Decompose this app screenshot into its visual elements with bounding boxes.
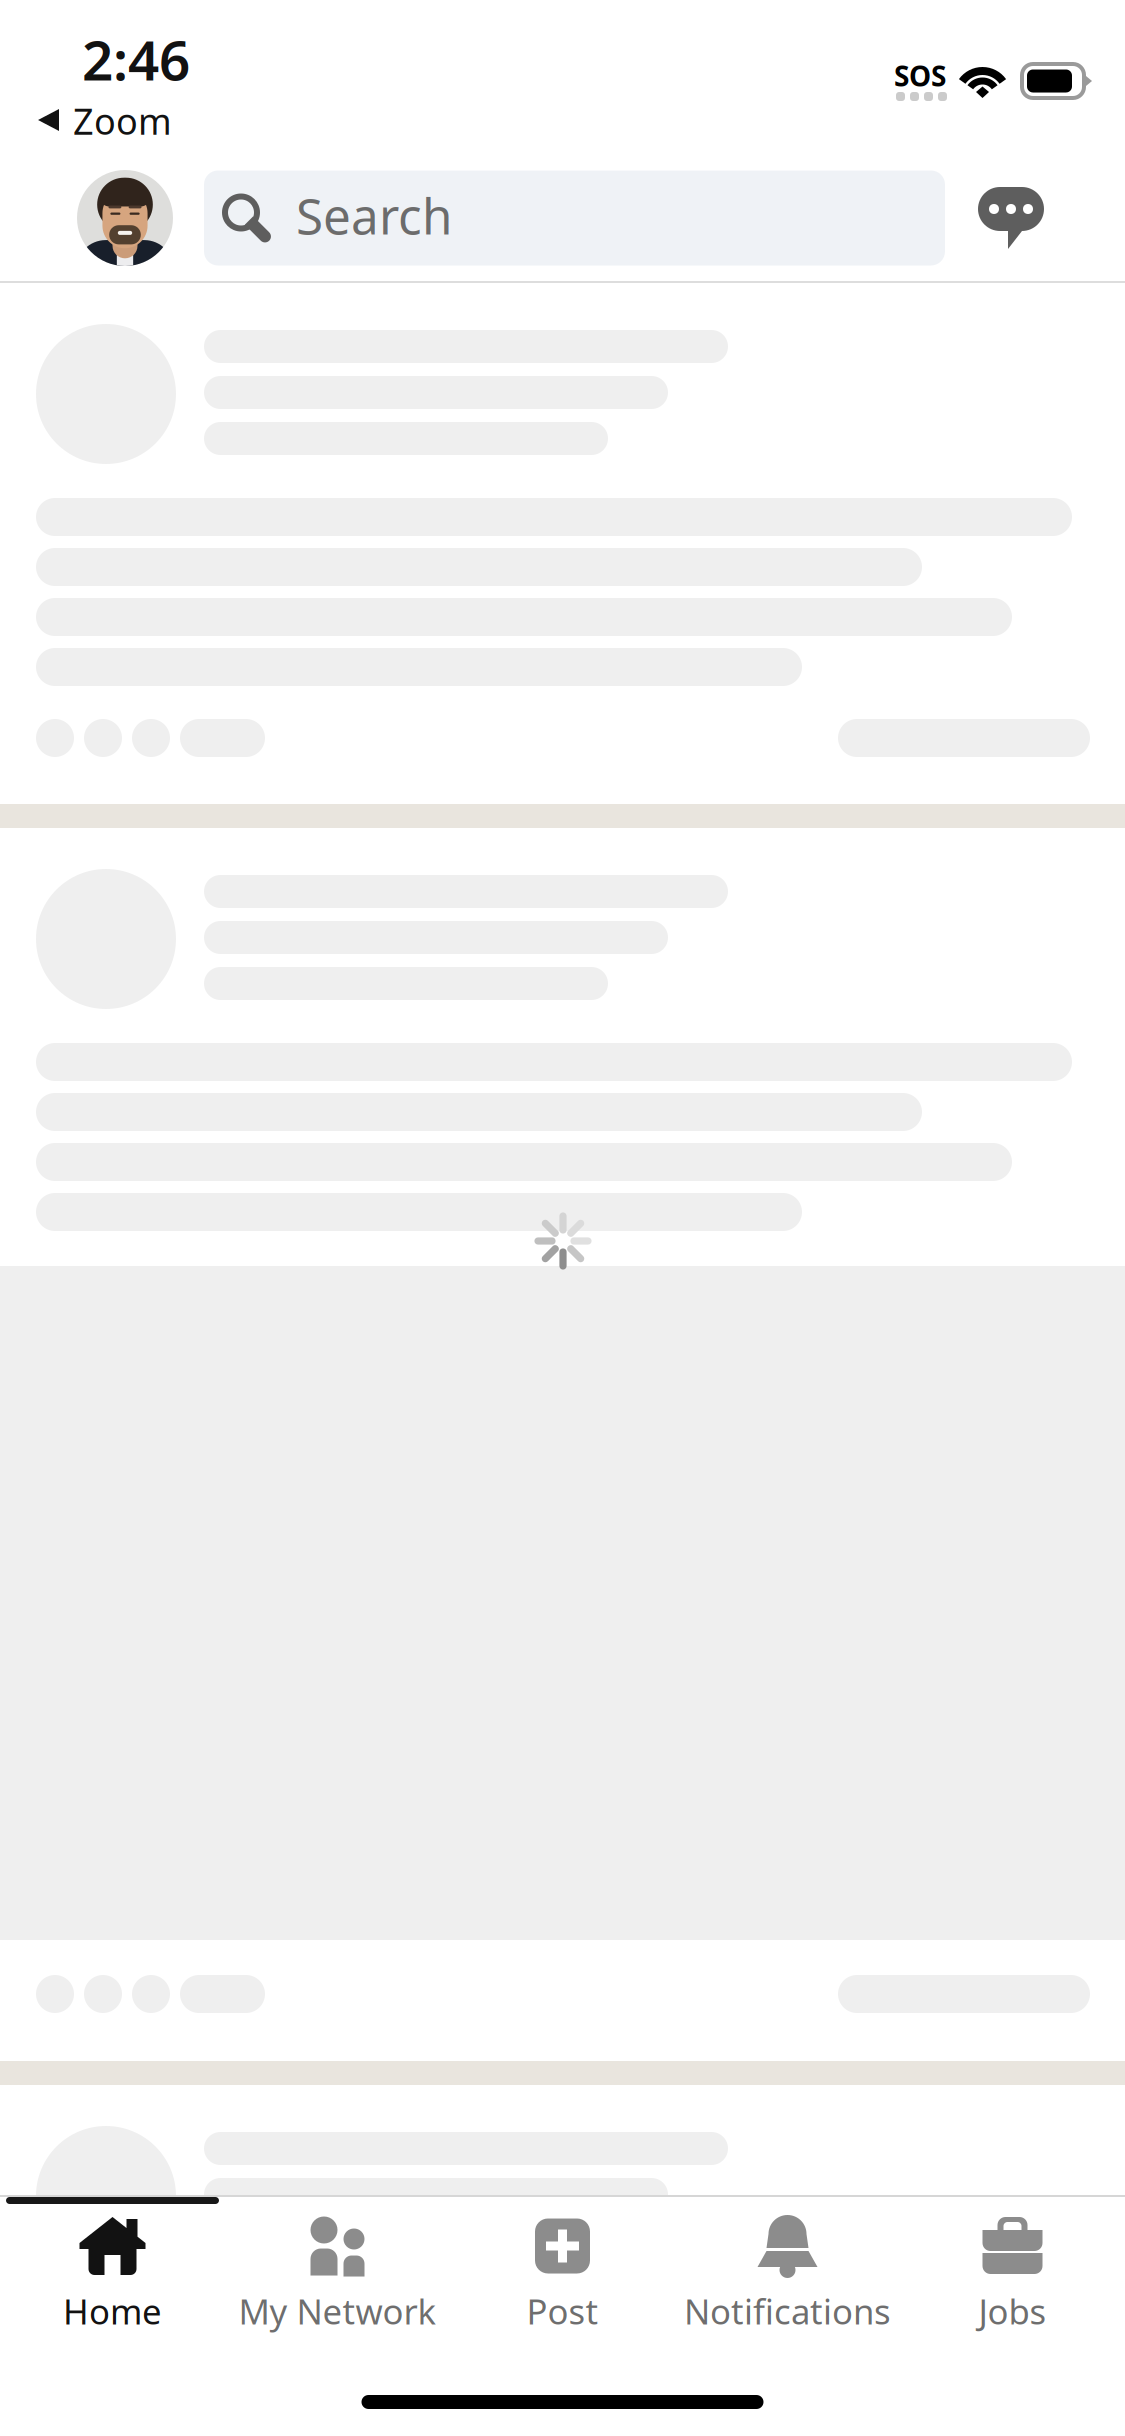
button[interactable]: Messaging [978, 187, 1125, 249]
staticText: 2:46 [82, 23, 190, 96]
staticText: Search [296, 182, 452, 248]
button[interactable]: Home [0, 2204, 225, 2336]
staticText: Home [63, 2288, 162, 2334]
button[interactable]: Notifications [675, 2204, 900, 2336]
staticText: Post [526, 2288, 598, 2334]
button[interactable]: Post [450, 2204, 675, 2336]
staticText: SOS [894, 57, 946, 94]
staticText: Notifications [684, 2288, 891, 2334]
staticText: Zoom [73, 97, 172, 145]
button[interactable]: Search [204, 170, 945, 265]
staticText: Jobs [978, 2288, 1046, 2334]
button[interactable]: My Network [225, 2204, 450, 2336]
staticText: My Network [238, 2288, 436, 2334]
button[interactable]: Jobs [900, 2204, 1125, 2336]
button[interactable]: Profile [0, 170, 204, 266]
